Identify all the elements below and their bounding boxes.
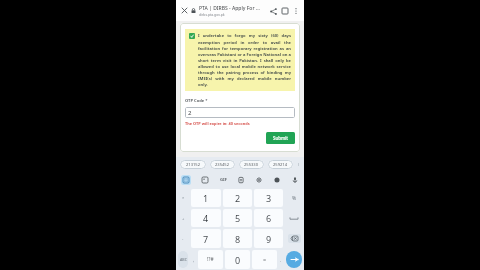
button[interactable]: Stickers xyxy=(195,172,214,188)
button[interactable]: 259214 xyxy=(268,160,293,169)
staticText: 2 xyxy=(188,109,192,117)
button[interactable]: 1 xyxy=(191,189,221,207)
staticText: OTP Code * xyxy=(185,98,208,104)
button[interactable]: GIF xyxy=(214,172,232,188)
staticText: PTA | DIRBS - Apply For ... xyxy=(199,5,260,12)
button[interactable]: space xyxy=(284,208,304,228)
button[interactable]: 0 xyxy=(225,250,250,269)
button[interactable]: Enter xyxy=(286,251,302,268)
button[interactable]: 6 xyxy=(254,209,283,227)
button[interactable]: Settings xyxy=(250,172,268,188)
staticText: 0 xyxy=(235,254,241,266)
button[interactable]: Keyboard apps xyxy=(176,172,195,188)
button[interactable]: 235452 xyxy=(210,160,235,169)
staticText: I undertake to forgo my sixty (60) days … xyxy=(198,33,291,87)
staticText: 8 xyxy=(235,233,241,245)
staticText: 4 xyxy=(203,212,209,224)
button[interactable]: * xyxy=(176,188,190,208)
button[interactable]: 2 xyxy=(223,189,252,207)
button[interactable]: + xyxy=(176,208,190,228)
button[interactable]: Close xyxy=(179,5,190,16)
button[interactable]: !?# xyxy=(198,250,223,269)
button[interactable]: PTA | DIRBS - Apply For ... xyxy=(199,5,265,17)
button[interactable]: 5 xyxy=(223,209,252,227)
staticText: = xyxy=(263,256,267,263)
staticText: 5 xyxy=(235,212,241,224)
staticText: 6 xyxy=(266,212,272,224)
button[interactable]: = xyxy=(252,250,277,269)
staticText: ( xyxy=(298,162,300,167)
button[interactable]: 3 xyxy=(254,189,283,207)
staticText: + xyxy=(182,216,185,221)
staticText: dirbs.pta.gov.pk xyxy=(199,12,225,17)
staticText: 259214 xyxy=(273,162,288,168)
staticText: 9 xyxy=(266,233,272,245)
staticText: - xyxy=(182,236,184,241)
button[interactable]: 8 xyxy=(223,229,252,248)
button[interactable]: 9 xyxy=(254,229,283,248)
staticText: . xyxy=(280,257,282,263)
staticText: ABC xyxy=(180,257,187,262)
button[interactable]: Share xyxy=(267,5,279,17)
button[interactable]: Voice input xyxy=(286,172,304,188)
button[interactable]: 4 xyxy=(191,209,221,227)
button[interactable]: Undertaking accepted xyxy=(189,33,195,39)
button[interactable]: 255330 xyxy=(239,160,264,169)
button[interactable]: % xyxy=(284,188,304,208)
button[interactable]: ABC xyxy=(178,251,188,268)
staticText: 2 xyxy=(235,192,241,204)
button[interactable]: Bookmark xyxy=(279,5,291,17)
button[interactable]: , xyxy=(190,249,197,270)
staticText: % xyxy=(292,195,297,202)
staticText: Submit xyxy=(273,135,288,141)
button[interactable]: 7 xyxy=(191,229,221,248)
staticText: 255330 xyxy=(244,162,259,168)
staticText: 1 xyxy=(203,192,209,204)
staticText: GIF xyxy=(220,177,227,183)
staticText: 235452 xyxy=(215,162,230,168)
staticText: 3 xyxy=(266,192,272,204)
button[interactable]: More options xyxy=(291,6,301,16)
button[interactable]: Submit xyxy=(266,132,295,144)
staticText: !?# xyxy=(207,256,214,263)
button[interactable]: 213152 xyxy=(180,160,206,169)
staticText: * xyxy=(182,196,185,201)
button[interactable]: Themes xyxy=(268,172,286,188)
button[interactable]: del xyxy=(284,228,304,249)
button[interactable]: 2 xyxy=(185,107,295,118)
button[interactable]: Clipboard xyxy=(232,172,250,188)
staticText: , xyxy=(193,257,195,263)
staticText: The OTP will expire in: 40 seconds xyxy=(185,121,250,126)
staticText: 7 xyxy=(203,233,209,245)
staticText: 213152 xyxy=(186,162,201,168)
